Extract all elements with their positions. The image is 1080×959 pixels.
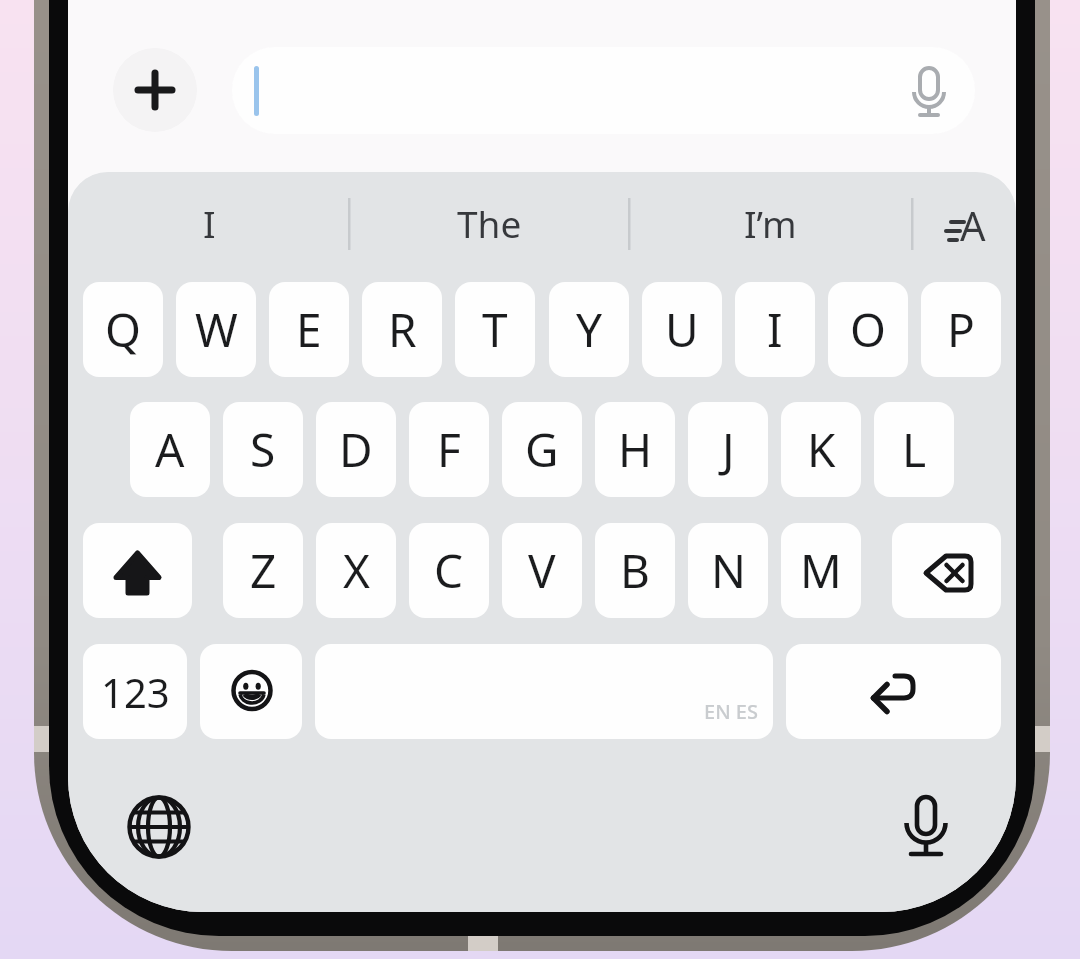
button[interactable]: E	[269, 282, 349, 377]
staticText: V	[528, 539, 556, 602]
button[interactable]: C	[409, 523, 489, 618]
button[interactable]: Y	[549, 282, 629, 377]
button[interactable]	[200, 644, 302, 739]
staticText: Q	[105, 298, 141, 361]
button[interactable]: A	[130, 402, 210, 497]
button[interactable]	[83, 523, 192, 618]
staticText: I	[767, 298, 783, 361]
button[interactable]: D	[316, 402, 396, 497]
button[interactable]: L	[874, 402, 954, 497]
staticText: E	[296, 298, 322, 361]
button[interactable]: F	[409, 402, 489, 497]
button[interactable]: I	[80, 190, 338, 256]
staticText: L	[902, 418, 927, 481]
staticText: I	[203, 198, 216, 248]
button[interactable]: R	[362, 282, 442, 377]
staticText: A	[155, 418, 185, 481]
button[interactable]	[232, 47, 975, 134]
staticText: U	[665, 298, 699, 361]
button[interactable]: W	[176, 282, 256, 377]
staticText: Z	[250, 539, 277, 602]
button[interactable]	[786, 644, 1001, 739]
staticText: G	[525, 418, 559, 481]
staticText: D	[339, 418, 373, 481]
button[interactable]: U	[642, 282, 722, 377]
staticText: 123	[101, 665, 170, 719]
button[interactable]: I	[735, 282, 815, 377]
staticText: Y	[576, 298, 603, 361]
staticText: P	[947, 298, 975, 361]
staticText: I’m	[744, 198, 797, 248]
staticText: The	[457, 198, 522, 248]
button[interactable]: P	[921, 282, 1001, 377]
button[interactable]: T	[455, 282, 535, 377]
button[interactable]: M	[781, 523, 861, 618]
button[interactable]: Q	[83, 282, 163, 377]
button[interactable]: X	[316, 523, 396, 618]
button[interactable]: EN ES	[315, 644, 773, 739]
staticText: S	[250, 418, 276, 481]
button[interactable]: J	[688, 402, 768, 497]
staticText: R	[388, 298, 417, 361]
staticText: J	[722, 418, 735, 481]
staticText: O	[850, 298, 886, 361]
staticText: C	[434, 539, 464, 602]
button[interactable]: O	[828, 282, 908, 377]
button[interactable]: N	[688, 523, 768, 618]
button[interactable]	[892, 523, 1001, 618]
staticText: W	[195, 298, 238, 361]
staticText: A	[960, 198, 986, 252]
button[interactable]: 123	[83, 644, 187, 739]
button[interactable]	[113, 48, 197, 132]
button[interactable]: A	[920, 192, 1008, 258]
staticText: K	[807, 418, 836, 481]
button[interactable]: S	[223, 402, 303, 497]
button[interactable]	[885, 785, 965, 880]
button[interactable]: Z	[223, 523, 303, 618]
staticText: F	[437, 418, 461, 481]
button[interactable]: K	[781, 402, 861, 497]
button[interactable]	[110, 787, 190, 867]
staticText: EN ES	[704, 698, 758, 725]
button[interactable]: G	[502, 402, 582, 497]
staticText: X	[343, 539, 370, 602]
button[interactable]: V	[502, 523, 582, 618]
button[interactable]: I’m	[633, 190, 908, 256]
button[interactable]: B	[595, 523, 675, 618]
button[interactable]: H	[595, 402, 675, 497]
staticText: N	[711, 539, 746, 602]
button[interactable]: The	[353, 190, 625, 256]
staticText: T	[482, 298, 508, 361]
staticText: B	[620, 539, 650, 602]
staticText: M	[800, 539, 842, 602]
staticText: H	[618, 418, 653, 481]
